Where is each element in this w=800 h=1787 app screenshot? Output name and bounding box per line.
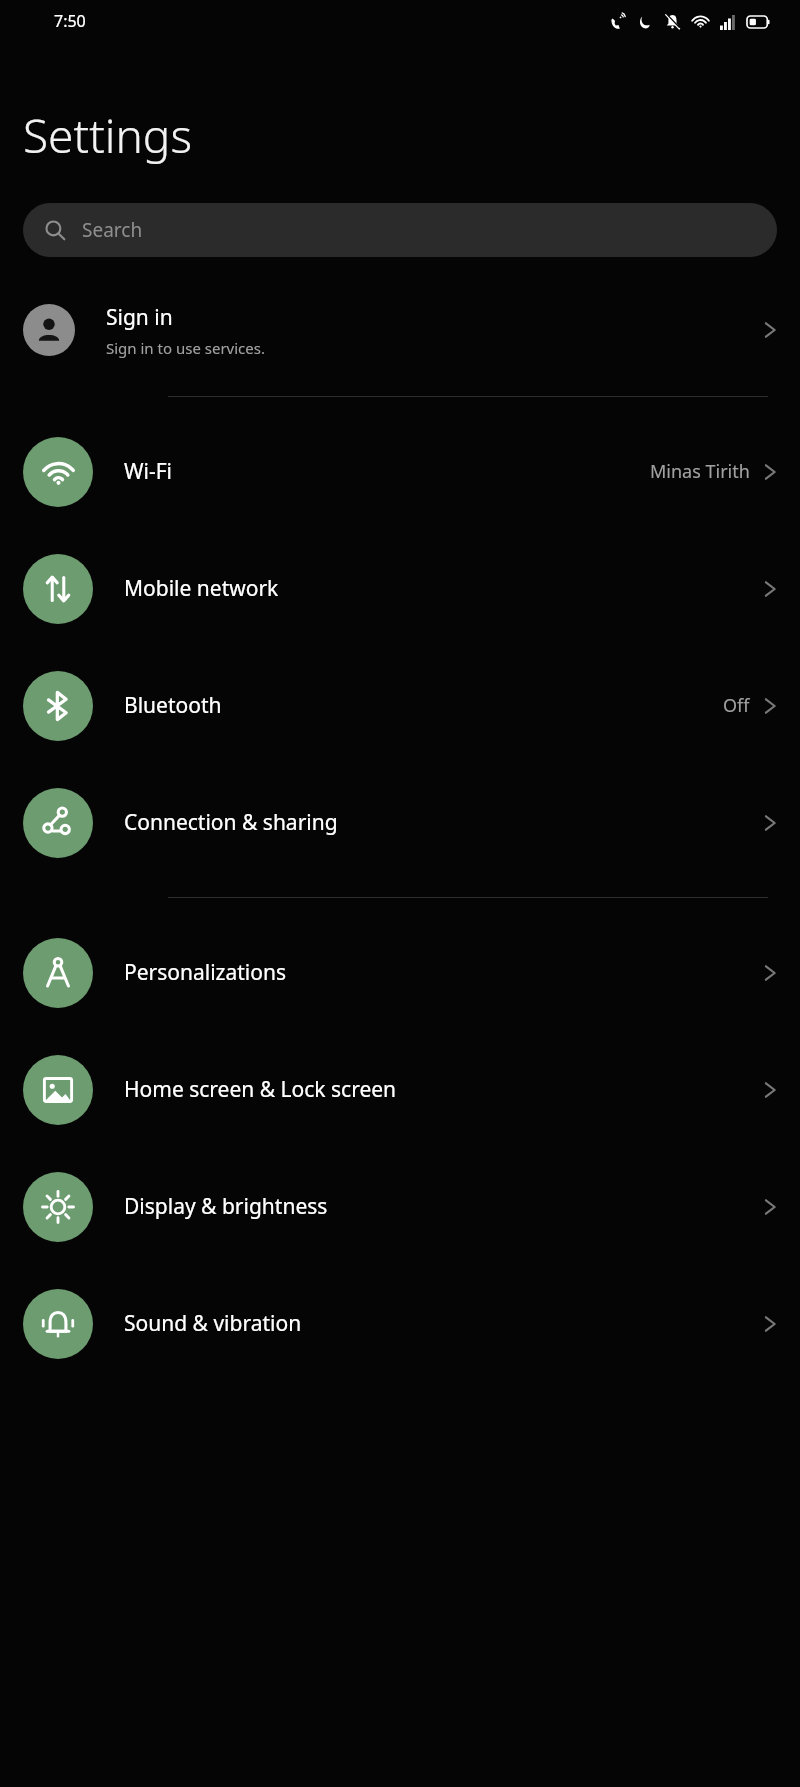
- button[interactable]: Connection & sharing: [0, 764, 800, 881]
- staticText: Personalizations: [124, 958, 764, 987]
- staticText: Connection & sharing: [124, 808, 764, 837]
- staticText: Sound & vibration: [124, 1309, 764, 1338]
- staticText: Bluetooth: [124, 691, 723, 720]
- staticText: Mobile network: [124, 574, 764, 603]
- button[interactable]: Sign in: [0, 282, 800, 378]
- button[interactable]: Sound & vibration: [0, 1265, 800, 1382]
- staticText: Sign in: [106, 303, 173, 332]
- button[interactable]: Personalizations: [0, 914, 800, 1031]
- staticText: 7:50: [54, 10, 86, 32]
- staticText: Minas Tirith: [650, 459, 750, 484]
- button[interactable]: Home screen & Lock screen: [0, 1031, 800, 1148]
- button[interactable]: Bluetooth: [0, 647, 800, 764]
- staticText: Search: [82, 217, 143, 243]
- button[interactable]: Mobile network: [0, 530, 800, 647]
- staticText: Sign in to use services.: [106, 338, 265, 358]
- button[interactable]: Wi-Fi: [0, 413, 800, 530]
- staticText: Settings: [23, 104, 192, 167]
- staticText: Display & brightness: [124, 1192, 764, 1221]
- staticText: Wi-Fi: [124, 457, 650, 486]
- button[interactable]: Display & brightness: [0, 1148, 800, 1265]
- staticText: Off: [723, 693, 750, 718]
- button[interactable]: Search: [23, 203, 777, 257]
- staticText: Home screen & Lock screen: [124, 1075, 764, 1104]
